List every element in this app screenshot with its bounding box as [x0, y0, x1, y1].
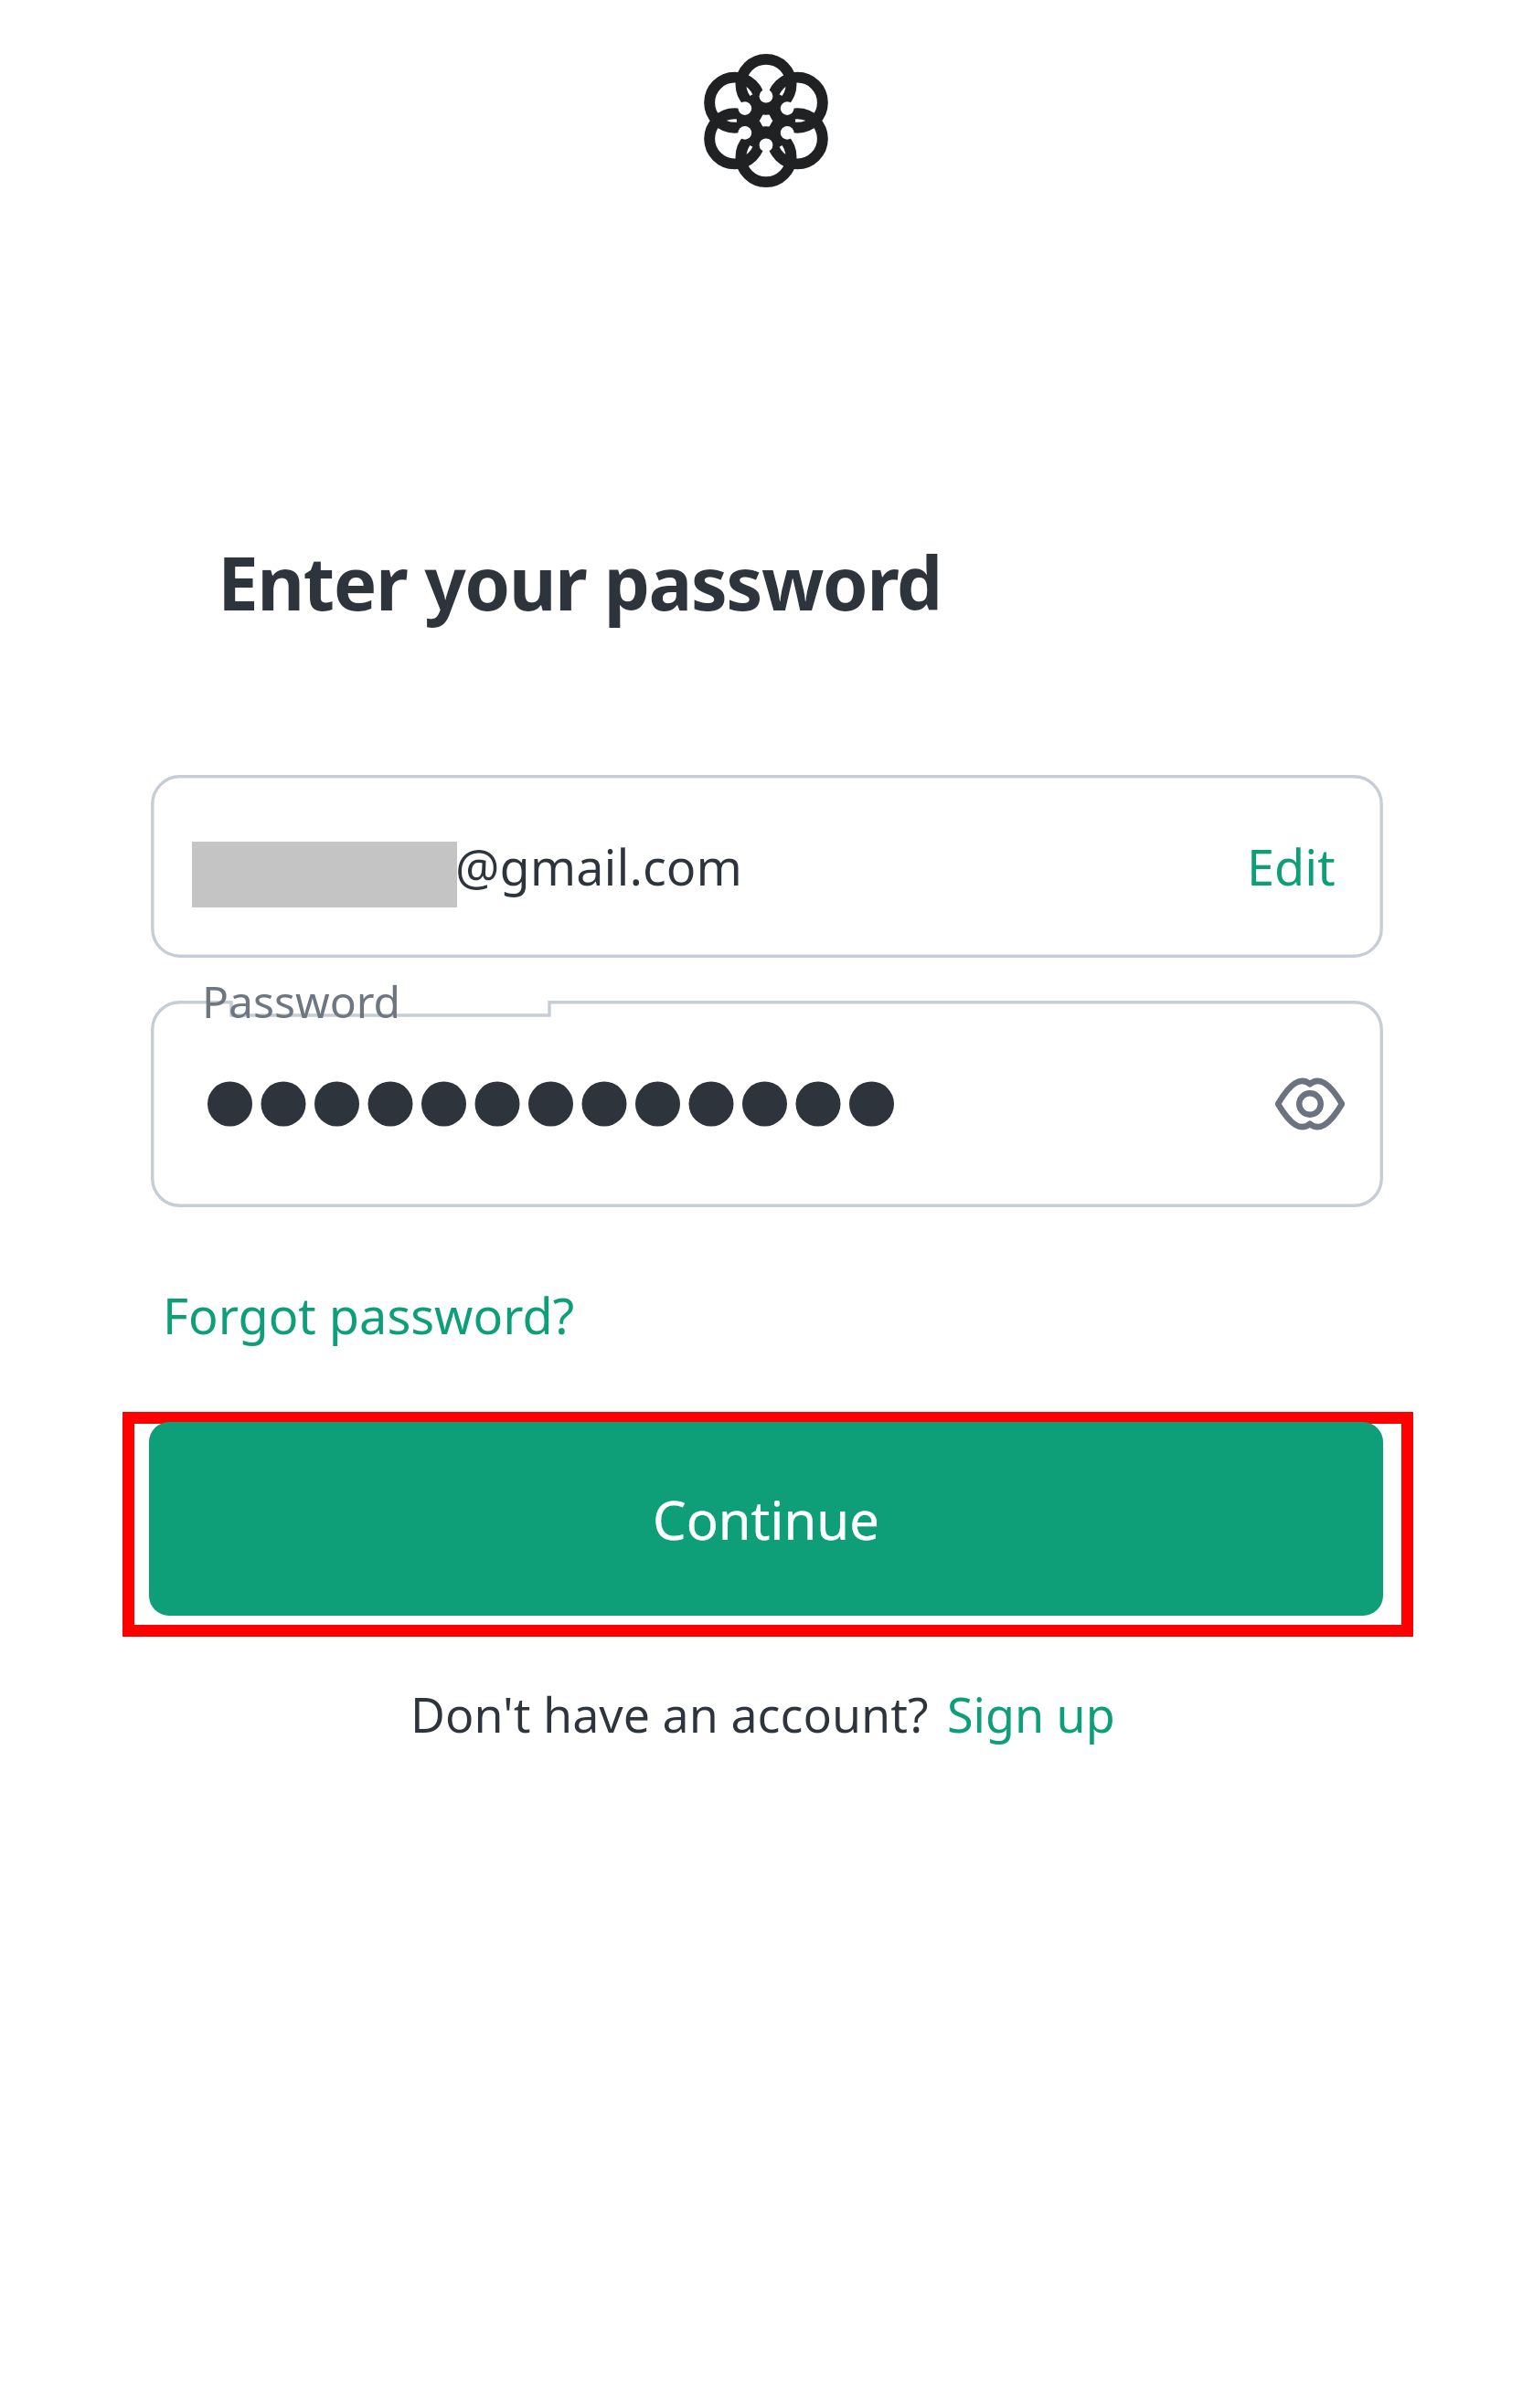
- button[interactable]: Sign up: [929, 1674, 1123, 1754]
- button[interactable]: Forgot password?: [144, 1268, 593, 1362]
- staticText: Enter your password: [218, 532, 942, 631]
- staticText: Don't have an account?: [410, 1681, 929, 1746]
- staticText: @gmail.com: [455, 833, 742, 900]
- staticText: Edit: [1247, 833, 1336, 900]
- button[interactable]: Continue: [149, 1422, 1383, 1616]
- staticText: Forgot password?: [163, 1281, 575, 1349]
- staticText: Password: [202, 971, 401, 1031]
- button[interactable]: Edit: [1221, 816, 1361, 917]
- staticText: Continue: [653, 1483, 879, 1555]
- staticText: Sign up: [947, 1681, 1115, 1746]
- button[interactable]: @gmail.com: [151, 775, 1383, 958]
- button[interactable]: Show password: [1264, 1058, 1356, 1150]
